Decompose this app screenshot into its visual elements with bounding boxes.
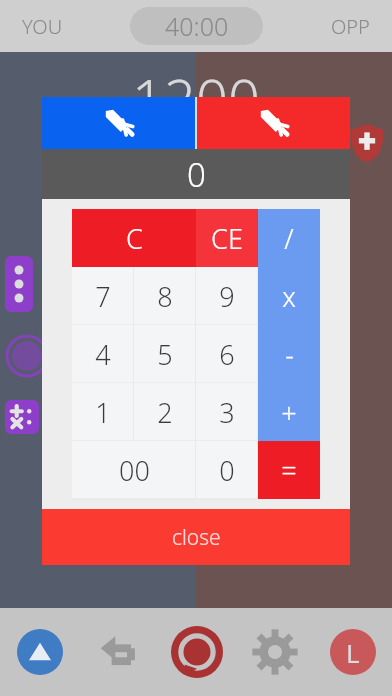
staticText: 00 — [119, 452, 150, 489]
button[interactable]: x — [258, 267, 320, 325]
staticText: L — [346, 635, 360, 670]
button[interactable]: 4 — [72, 325, 134, 383]
staticText: 1 — [95, 394, 111, 431]
button[interactable]: Life points — [350, 124, 384, 162]
staticText: 8 — [157, 278, 173, 315]
button[interactable]: - — [258, 325, 320, 383]
button[interactable]: Undo — [79, 608, 158, 696]
button[interactable]: 8 — [134, 267, 196, 325]
button[interactable]: CE — [196, 209, 258, 267]
staticText: 3 — [219, 394, 235, 431]
button[interactable]: Token — [5, 334, 49, 378]
staticText: close — [172, 523, 221, 552]
button[interactable]: / — [258, 209, 320, 267]
button[interactable]: Log — [314, 608, 392, 696]
staticText: 0 — [219, 452, 235, 489]
staticText: / — [284, 220, 294, 257]
button[interactable]: 40:00 — [130, 7, 263, 45]
button[interactable]: Your attack — [42, 97, 195, 149]
button[interactable]: Opponent attack — [197, 97, 350, 149]
staticText: = — [281, 452, 297, 489]
staticText: - — [285, 336, 294, 373]
button[interactable]: 0 — [196, 441, 258, 499]
staticText: OPP — [331, 13, 370, 40]
button[interactable]: 7 — [72, 267, 134, 325]
staticText: 9 — [219, 278, 235, 315]
staticText: x — [282, 278, 296, 315]
button[interactable]: Calculator — [5, 400, 39, 434]
button[interactable]: 00 — [72, 441, 196, 499]
staticText: 6 — [219, 336, 235, 373]
button[interactable]: = — [258, 441, 320, 499]
button[interactable]: 3 — [196, 383, 258, 441]
staticText: 1200 — [132, 60, 260, 136]
staticText: C — [126, 220, 143, 257]
staticText: 4 — [95, 336, 111, 373]
button[interactable]: 9 — [196, 267, 258, 325]
button[interactable]: + — [258, 383, 320, 441]
button[interactable]: More — [5, 256, 33, 312]
staticText: CE — [211, 220, 243, 257]
button[interactable]: 2 — [134, 383, 196, 441]
button[interactable]: 6 — [196, 325, 258, 383]
staticText: 5 — [157, 336, 173, 373]
button[interactable]: Settings — [236, 608, 314, 696]
staticText: + — [281, 394, 297, 431]
staticText: YOU — [22, 13, 63, 40]
staticText: 7 — [95, 278, 111, 315]
staticText: 2 — [157, 394, 173, 431]
button[interactable]: C — [72, 209, 196, 267]
button[interactable]: Coin flip — [158, 608, 236, 696]
staticText: 40:00 — [165, 9, 229, 43]
button[interactable]: 5 — [134, 325, 196, 383]
button[interactable]: 1 — [72, 383, 134, 441]
button[interactable]: Life points up — [0, 608, 79, 696]
staticText: 0 — [187, 152, 206, 197]
button[interactable]: close — [42, 509, 350, 565]
